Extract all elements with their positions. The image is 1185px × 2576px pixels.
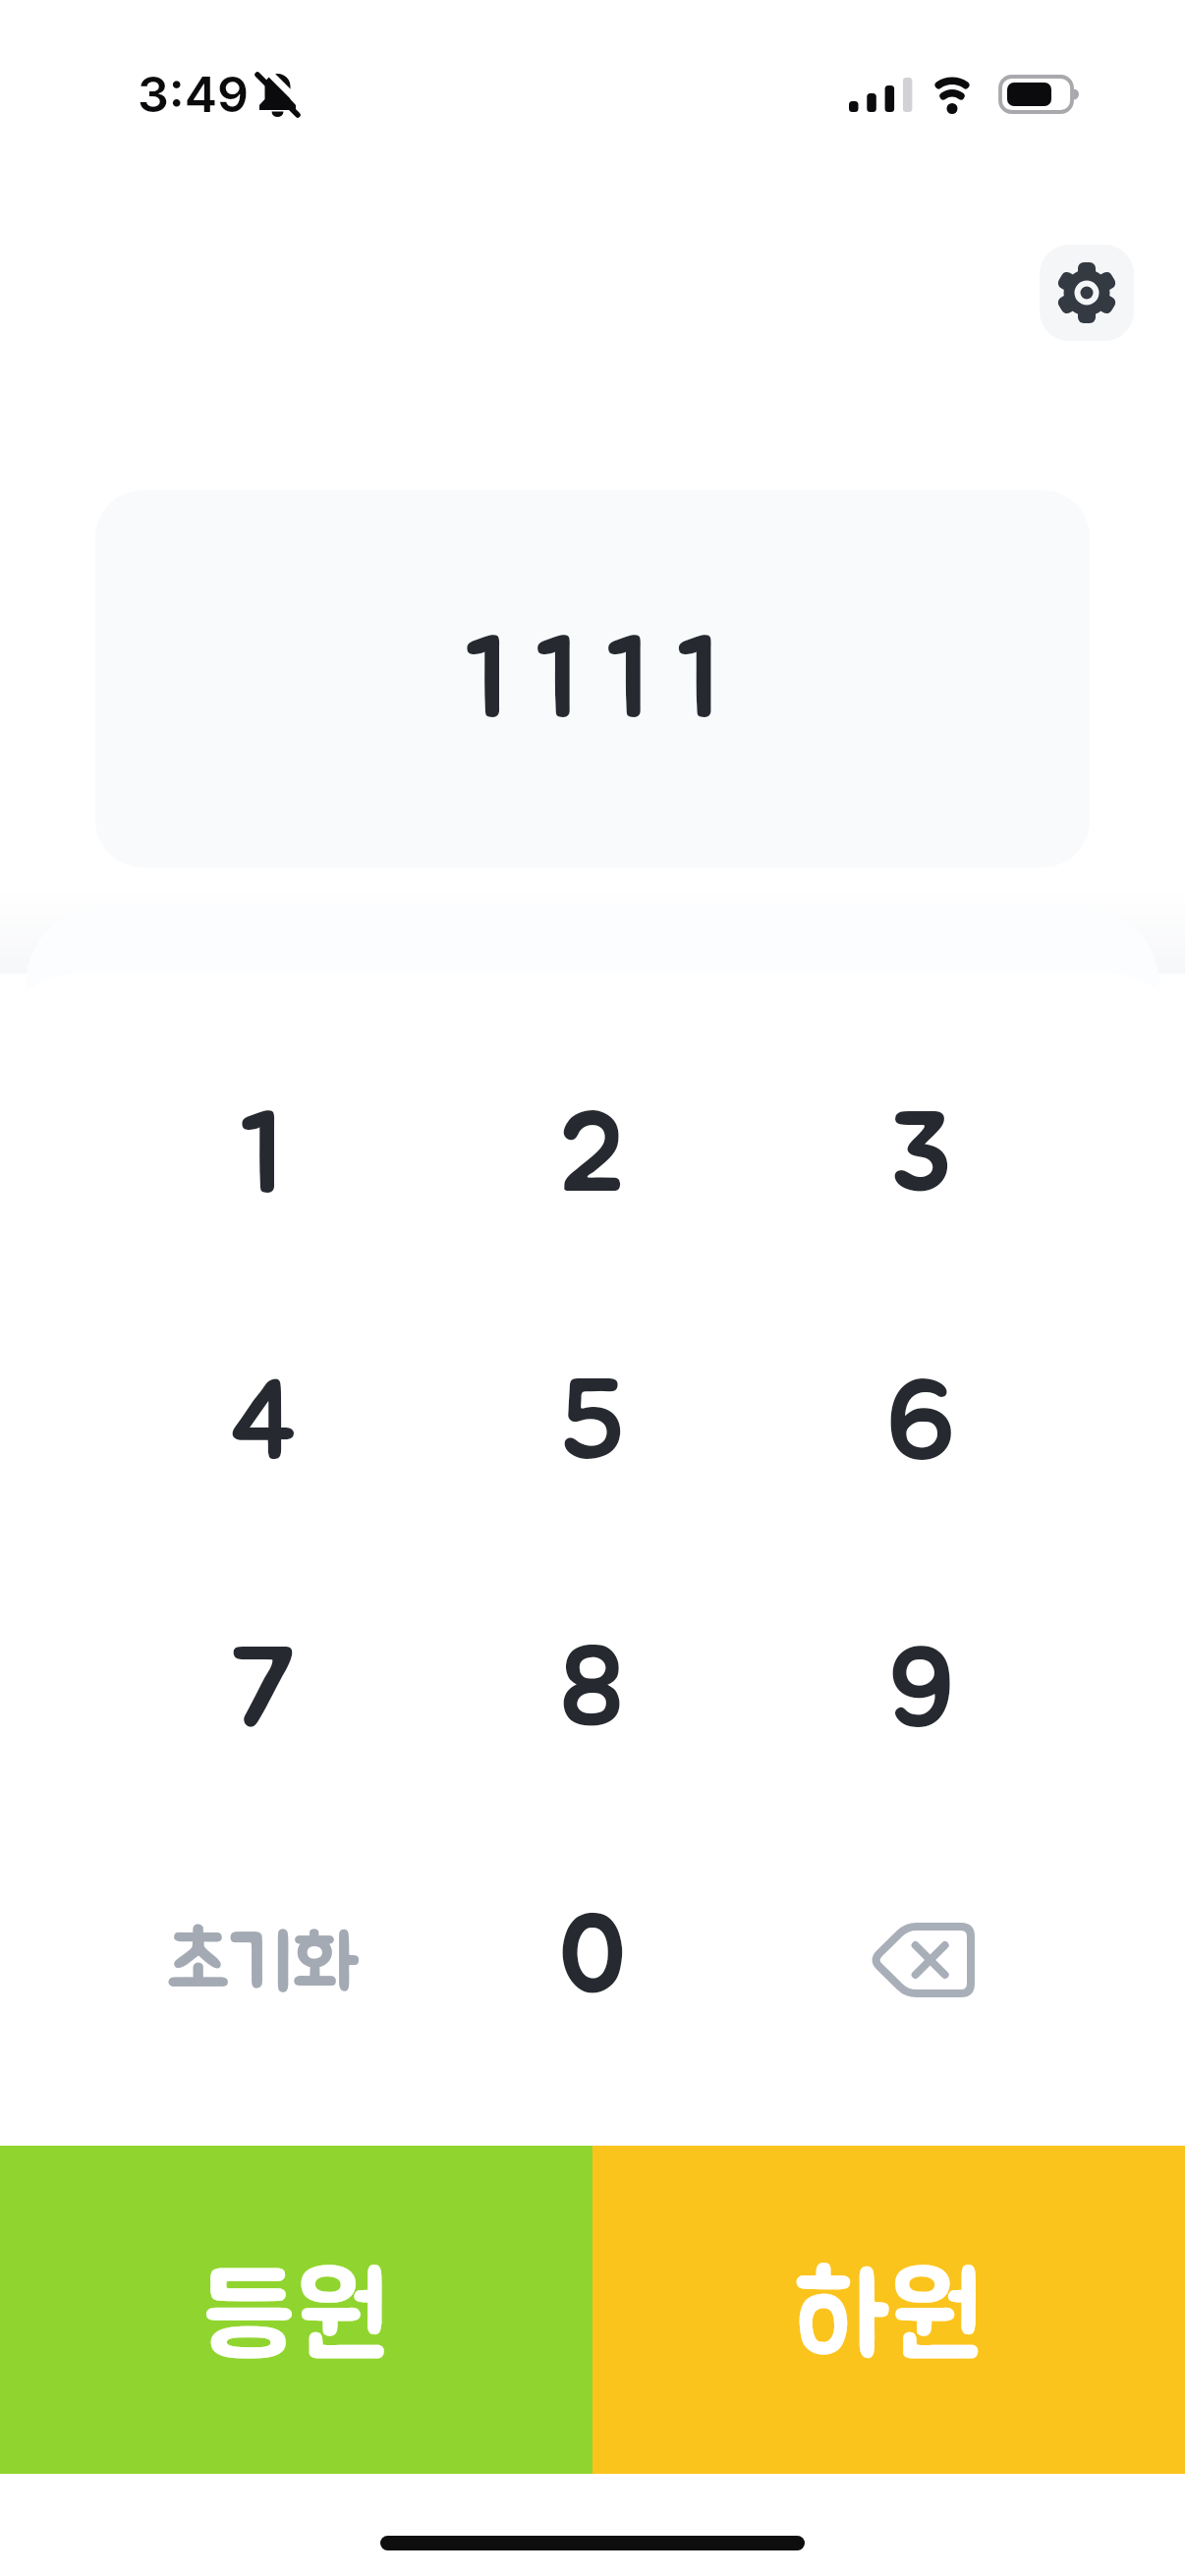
staticText: 하원 — [794, 2263, 984, 2377]
button[interactable] — [757, 1825, 1086, 2095]
staticText: 8 — [559, 1637, 625, 1749]
staticText: 5 — [560, 1370, 625, 1482]
button[interactable]: 2 — [427, 1024, 757, 1293]
button[interactable]: 4 — [98, 1291, 427, 1560]
staticText: 0 — [558, 1904, 627, 2016]
staticText: 등원 — [204, 2263, 389, 2377]
staticText: 7 — [229, 1637, 297, 1749]
button[interactable]: 0 — [427, 1825, 757, 2095]
staticText: 3:49 — [138, 65, 250, 124]
button[interactable]: 9 — [757, 1558, 1086, 1827]
staticText: 6 — [886, 1370, 956, 1482]
staticText: 1 — [240, 1102, 286, 1214]
staticText: 9 — [888, 1637, 955, 1749]
button[interactable]: 5 — [427, 1291, 757, 1560]
button[interactable] — [1040, 245, 1134, 341]
staticText: 3 — [890, 1102, 952, 1214]
staticText: 1111 — [465, 627, 748, 739]
staticText: 2 — [559, 1102, 625, 1214]
button[interactable]: 6 — [757, 1291, 1086, 1560]
button[interactable]: 3 — [757, 1024, 1086, 1293]
staticText: 초기화 — [167, 1928, 359, 2004]
button[interactable]: 하원 — [592, 2146, 1185, 2474]
button[interactable]: 8 — [427, 1558, 757, 1827]
button[interactable]: 7 — [98, 1558, 427, 1827]
button[interactable]: 1 — [98, 1024, 427, 1293]
button[interactable]: 초기화 — [98, 1825, 427, 2095]
staticText: 4 — [228, 1370, 299, 1482]
button[interactable]: 등원 — [0, 2146, 592, 2474]
